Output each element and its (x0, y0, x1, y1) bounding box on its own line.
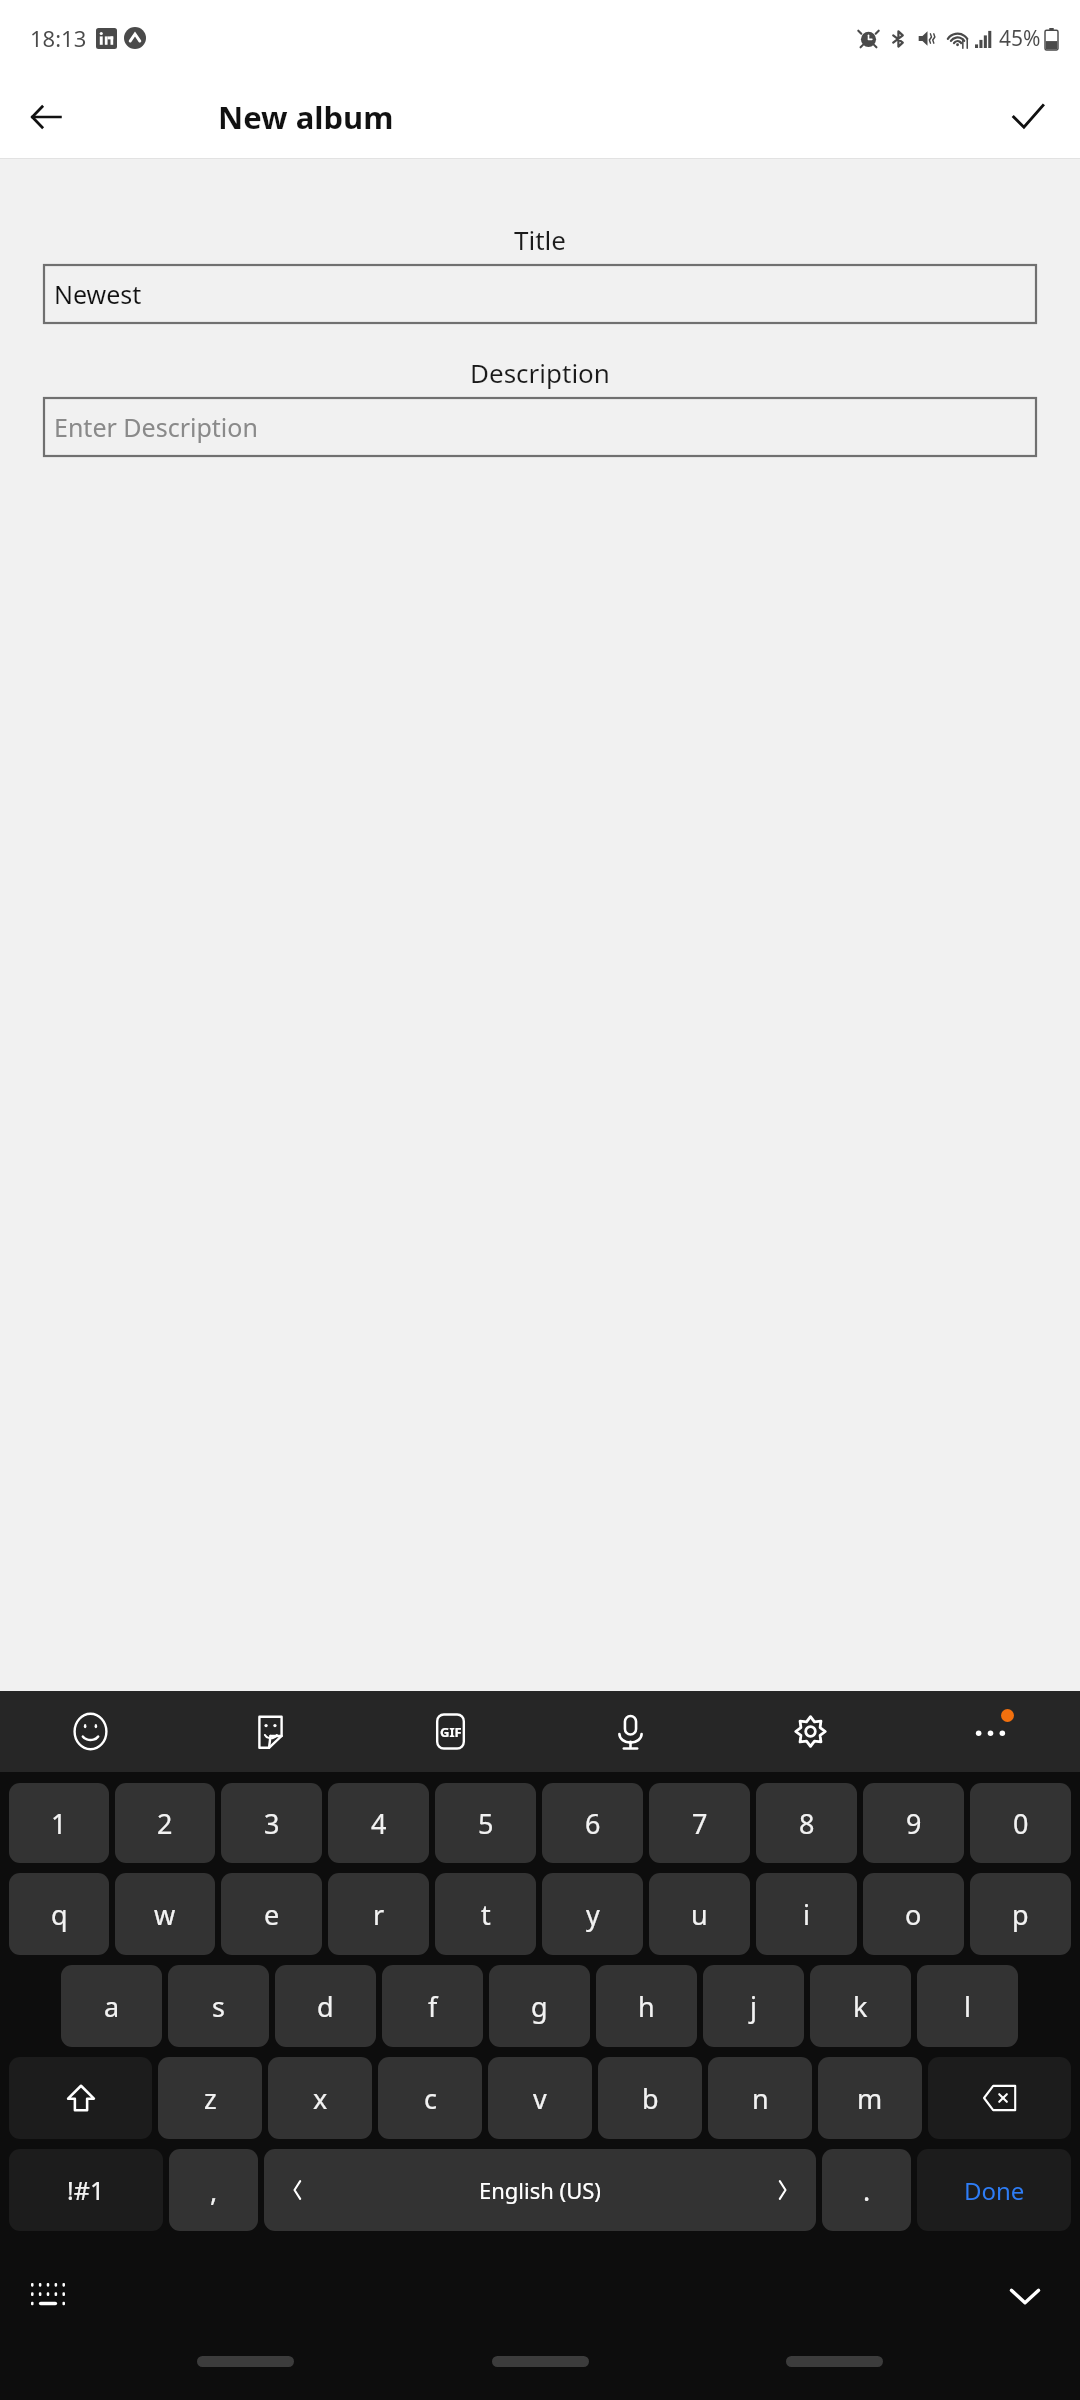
button[interactable]: 4 (328, 1783, 429, 1863)
button[interactable]: Save album (996, 85, 1060, 149)
button[interactable]: 7 (649, 1783, 750, 1863)
staticText: Done (964, 2174, 1025, 2207)
staticText: 9 (906, 1805, 922, 1842)
staticText: x (313, 2080, 328, 2117)
staticText: z (204, 2080, 217, 2117)
button[interactable]: 3 (221, 1783, 322, 1863)
button[interactable]: Emoji (0, 1691, 180, 1772)
button[interactable]: GIF (360, 1691, 540, 1772)
staticText: Newest (54, 277, 142, 311)
button[interactable]: 1 (9, 1783, 109, 1863)
button[interactable]: 9 (863, 1783, 964, 1863)
staticText: 4 (371, 1805, 387, 1842)
button[interactable]: Enter Description (44, 398, 1036, 456)
button[interactable]: 6 (542, 1783, 643, 1863)
staticText: 6 (585, 1805, 601, 1842)
staticText: d (317, 1988, 334, 2025)
button[interactable]: Voice input (540, 1691, 720, 1772)
button[interactable]: More options (900, 1691, 1080, 1772)
staticText: n (752, 2080, 769, 2117)
staticText: Title (514, 222, 566, 257)
button[interactable]: 5 (435, 1783, 536, 1863)
button[interactable]: Shift (9, 2057, 152, 2139)
staticText: New album (218, 96, 394, 138)
staticText: t (481, 1896, 491, 1933)
staticText: English (US) (479, 2175, 601, 2205)
staticText: l (964, 1988, 971, 2025)
staticText: 1 (51, 1805, 67, 1842)
button[interactable]: o (863, 1873, 964, 1955)
staticText: o (905, 1896, 922, 1933)
button[interactable]: Hide keyboard (994, 2265, 1056, 2327)
button[interactable]: z (158, 2057, 262, 2139)
staticText: GIF (440, 1723, 462, 1741)
staticText: i (803, 1896, 810, 1933)
staticText: e (264, 1896, 280, 1933)
staticText: 18:13 (30, 23, 87, 53)
button[interactable]: d (275, 1965, 376, 2047)
button[interactable]: j (703, 1965, 804, 2047)
button[interactable]: b (598, 2057, 702, 2139)
button[interactable]: c (378, 2057, 482, 2139)
button[interactable]: g (489, 1965, 590, 2047)
button[interactable]: Backspace (928, 2057, 1071, 2139)
staticText: . (863, 2172, 871, 2209)
staticText: k (853, 1988, 868, 2025)
staticText: y (586, 1896, 600, 1933)
button[interactable]: , (169, 2149, 258, 2231)
staticText: s (212, 1988, 225, 2025)
button[interactable]: . (822, 2149, 911, 2231)
staticText: g (531, 1988, 548, 2025)
staticText: Description (470, 355, 610, 390)
button[interactable]: Done (917, 2149, 1071, 2231)
button[interactable]: t (435, 1873, 536, 1955)
staticText: p (1012, 1896, 1029, 1933)
button[interactable]: q (9, 1873, 109, 1955)
staticText: , (210, 2172, 218, 2209)
button[interactable]: n (708, 2057, 812, 2139)
button[interactable]: 2 (115, 1783, 215, 1863)
button[interactable]: u (649, 1873, 750, 1955)
button[interactable]: w (115, 1873, 215, 1955)
button[interactable]: 0 (970, 1783, 1071, 1863)
button[interactable]: h (596, 1965, 697, 2047)
button[interactable]: x (268, 2057, 372, 2139)
staticText: h (638, 1988, 655, 2025)
staticText: v (533, 2080, 547, 2117)
button[interactable]: Keyboard settings (720, 1691, 900, 1772)
staticText: !#1 (67, 2173, 105, 2207)
button[interactable]: Stickers (180, 1691, 360, 1772)
button[interactable]: l (917, 1965, 1018, 2047)
staticText: m (857, 2080, 883, 2117)
staticText: a (104, 1988, 120, 2025)
button[interactable]: i (756, 1873, 857, 1955)
button[interactable]: a (61, 1965, 162, 2047)
button[interactable]: e (221, 1873, 322, 1955)
button[interactable]: Switch keyboard (20, 2268, 76, 2324)
button[interactable]: Back (14, 85, 78, 149)
staticText: u (691, 1896, 708, 1933)
staticText: 7 (692, 1805, 708, 1842)
button[interactable]: s (168, 1965, 269, 2047)
button[interactable]: !#1 (9, 2149, 163, 2231)
button[interactable]: v (488, 2057, 592, 2139)
staticText: f (428, 1988, 438, 2025)
staticText: 45% (999, 24, 1041, 53)
staticText: 8 (799, 1805, 815, 1842)
button[interactable]: 8 (756, 1783, 857, 1863)
button[interactable]: k (810, 1965, 911, 2047)
staticText: j (750, 1988, 757, 2025)
staticText: 2 (157, 1805, 173, 1842)
button[interactable]: f (382, 1965, 483, 2047)
staticText: Enter Description (54, 410, 258, 444)
staticText: b (642, 2080, 659, 2117)
staticText: c (424, 2080, 437, 2117)
button[interactable]: English (US) (264, 2149, 816, 2231)
staticText: 3 (264, 1805, 280, 1842)
button[interactable]: p (970, 1873, 1071, 1955)
button[interactable]: m (818, 2057, 922, 2139)
button[interactable]: y (542, 1873, 643, 1955)
button[interactable]: r (328, 1873, 429, 1955)
staticText: w (154, 1896, 176, 1933)
button[interactable]: Newest (44, 265, 1036, 323)
